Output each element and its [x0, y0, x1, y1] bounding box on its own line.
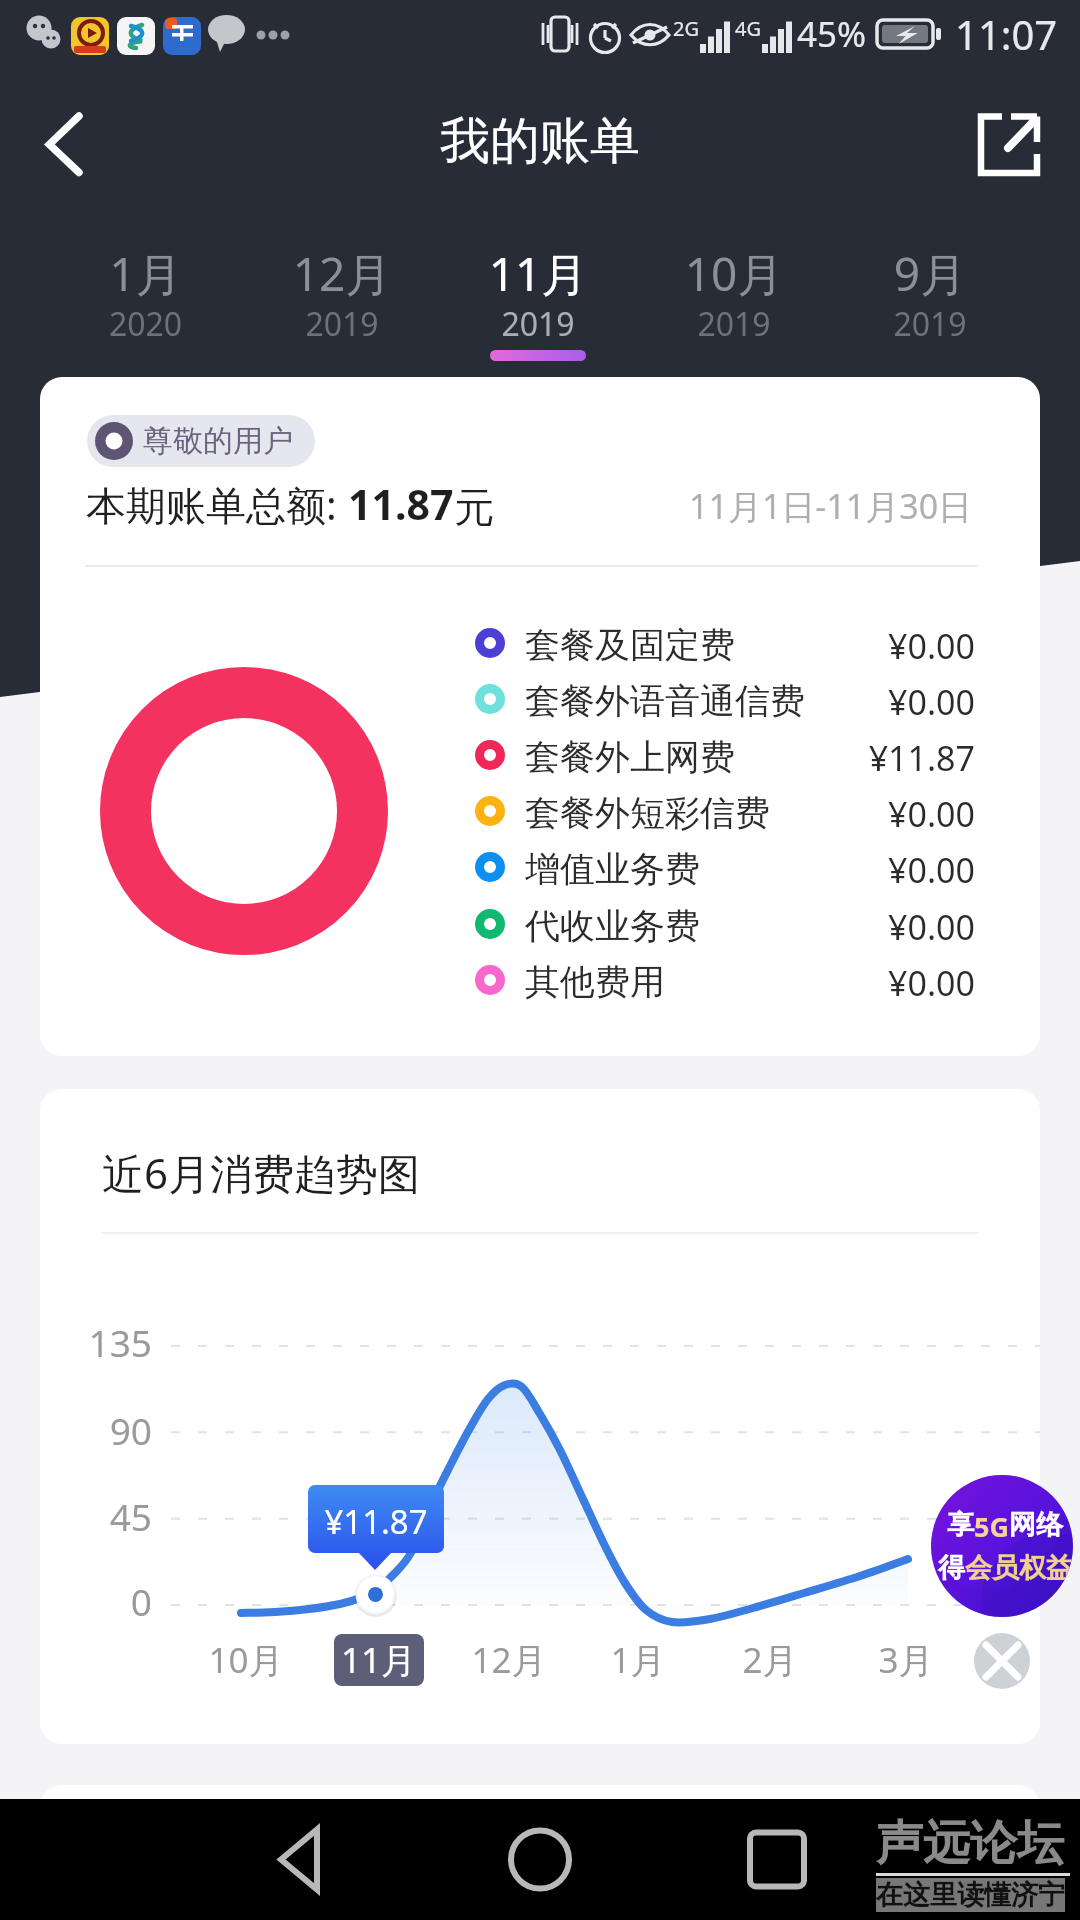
staticText: ¥0.00	[740, 960, 975, 1006]
staticText: 10月	[636, 242, 832, 305]
staticText: ¥0.00	[740, 904, 975, 950]
staticText: ¥0.00	[740, 791, 975, 837]
button[interactable]: Back	[250, 1799, 350, 1920]
button[interactable]: 12月	[244, 228, 440, 378]
button[interactable]: 5G advertisement	[931, 1475, 1073, 1617]
staticText: ¥0.00	[740, 623, 975, 669]
staticText: 11月1日-11月30日	[689, 483, 973, 529]
staticText: 2020	[47, 302, 244, 346]
button[interactable]: 9月	[832, 228, 1028, 378]
staticText: 45%	[797, 10, 867, 58]
button[interactable]: Home	[490, 1799, 590, 1920]
staticText: 4G	[735, 15, 761, 42]
staticText: 套餐外上网费	[525, 735, 735, 779]
staticText: 套餐外语音通信费	[525, 679, 805, 723]
staticText: 2G	[673, 15, 699, 42]
staticText: ¥11.87	[740, 735, 975, 781]
staticText: 网络	[1009, 1508, 1063, 1542]
staticText: ¥11.87	[308, 1499, 444, 1544]
button[interactable]: Recent apps	[727, 1799, 827, 1920]
staticText: 11月	[440, 242, 636, 305]
staticText: 45	[42, 1491, 152, 1541]
staticText: 2019	[636, 302, 832, 346]
staticText: 3月	[846, 1636, 966, 1684]
staticText: 135	[42, 1317, 152, 1367]
button[interactable]: 11月	[334, 1634, 424, 1686]
staticText: 0	[42, 1576, 152, 1626]
staticText: 近6月消费趋势图	[102, 1144, 421, 1201]
staticText: 享	[947, 1508, 974, 1542]
button[interactable]: Share	[963, 98, 1053, 188]
button[interactable]: 1月	[47, 228, 244, 378]
staticText: 套餐外短彩信费	[525, 791, 770, 835]
staticText: 1月	[578, 1636, 698, 1684]
staticText: 在这里读懂济宁	[876, 1878, 1065, 1912]
staticText: 声远论坛	[876, 1814, 1064, 1873]
button[interactable]: 10月	[636, 228, 832, 378]
staticText: 代收业务费	[525, 904, 700, 948]
button[interactable]: Back	[12, 94, 112, 194]
staticText: 元	[454, 482, 494, 532]
staticText: 套餐及固定费	[525, 623, 735, 667]
staticText: 尊敬的用户	[143, 422, 293, 460]
staticText: 其他费用	[525, 960, 665, 1004]
staticText: ¥0.00	[740, 679, 975, 725]
staticText: 10月	[186, 1636, 306, 1684]
staticText: ¥0.00	[740, 847, 975, 893]
staticText: 本期账单总额:	[86, 477, 348, 532]
staticText: 11月	[341, 1636, 417, 1684]
staticText: 1月	[47, 242, 244, 305]
staticText: 我的账单	[0, 110, 1080, 173]
staticText: 2019	[440, 302, 636, 346]
staticText: 会员权益	[965, 1551, 1073, 1585]
staticText: 12月	[449, 1636, 569, 1684]
staticText: 9月	[832, 242, 1028, 305]
staticText: 90	[42, 1405, 152, 1455]
staticText: 2019	[832, 302, 1028, 346]
button[interactable]: Close advertisement	[974, 1633, 1030, 1689]
staticText: 得	[938, 1551, 965, 1585]
staticText: 11:07	[955, 7, 1058, 61]
staticText: 5G	[974, 1508, 1009, 1545]
staticText: 2月	[710, 1636, 830, 1684]
staticText: 增值业务费	[525, 847, 700, 891]
staticText: 11.87	[348, 476, 454, 532]
staticText: 12月	[244, 242, 440, 305]
button[interactable]: 11月	[440, 228, 636, 378]
staticText: 2019	[244, 302, 440, 346]
